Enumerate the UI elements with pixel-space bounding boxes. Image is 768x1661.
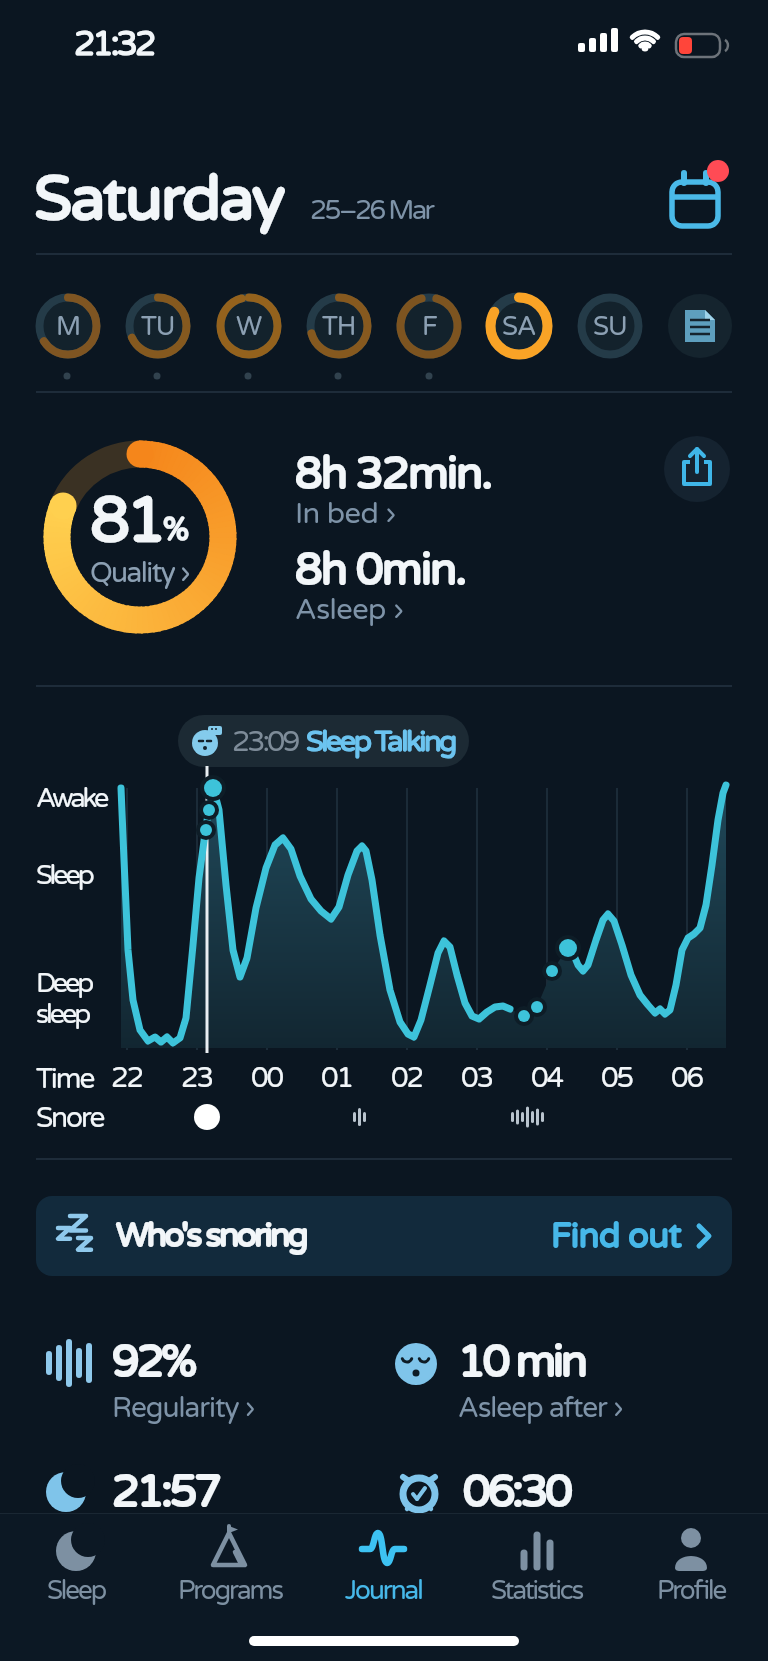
- button[interactable]: SU: [578, 294, 642, 358]
- button[interactable]: SA: [487, 294, 551, 358]
- button[interactable]: [656, 156, 736, 236]
- staticText: 8h 32min.: [295, 448, 492, 501]
- staticText: 8h 32min.: [295, 448, 492, 501]
- staticText: Journal: [345, 1575, 422, 1606]
- staticText: Who's snoring: [116, 1216, 307, 1256]
- staticText: 23: [181, 1061, 213, 1095]
- staticText: W: [236, 311, 262, 342]
- staticText: 00: [251, 1061, 283, 1095]
- staticText: Sleep Talking: [306, 724, 455, 759]
- staticText: %: [163, 511, 190, 550]
- staticText: M: [56, 311, 81, 342]
- button[interactable]: Sleep: [0, 1525, 153, 1606]
- staticText: 92%: [112, 1336, 195, 1389]
- button[interactable]: TU: [126, 294, 190, 358]
- button[interactable]: 21:57: [44, 1466, 219, 1522]
- button[interactable]: [668, 294, 732, 358]
- staticText: Sleep Talking: [306, 724, 455, 759]
- button[interactable]: F: [397, 294, 461, 358]
- staticText: Programs: [178, 1575, 282, 1606]
- staticText: Deep sleep: [36, 967, 92, 1031]
- button[interactable]: 06:30: [395, 1466, 570, 1522]
- button[interactable]: Profile: [614, 1525, 768, 1606]
- staticText: TU: [141, 311, 175, 342]
- staticText: Regularity ›: [112, 1391, 255, 1425]
- staticText: 21:57: [112, 1466, 219, 1519]
- staticText: 92%: [112, 1336, 195, 1389]
- button[interactable]: TH: [307, 294, 371, 358]
- button[interactable]: Asleep ›: [295, 592, 404, 627]
- staticText: 81: [90, 482, 163, 559]
- staticText: 10 min: [458, 1336, 585, 1389]
- staticText: Quality ›: [90, 556, 190, 590]
- staticText: 06:30: [463, 1466, 570, 1519]
- button[interactable]: Statistics: [460, 1525, 614, 1606]
- staticText: SA: [502, 311, 536, 342]
- staticText: Saturday: [34, 162, 284, 237]
- button[interactable]: 10 min: [390, 1336, 623, 1425]
- staticText: Find out: [551, 1216, 682, 1257]
- staticText: 8h 0min.: [295, 544, 466, 597]
- staticText: Awake: [36, 782, 107, 815]
- staticText: SU: [593, 311, 627, 342]
- staticText: 25–26 Mar: [310, 194, 433, 227]
- staticText: 81: [90, 482, 163, 559]
- staticText: %: [163, 511, 190, 550]
- button[interactable]: Programs: [153, 1525, 306, 1606]
- staticText: F: [422, 311, 437, 342]
- button[interactable]: 23:09: [178, 715, 469, 767]
- staticText: 21:32: [74, 24, 154, 65]
- button[interactable]: [664, 436, 730, 502]
- staticText: Sleep: [36, 859, 92, 892]
- staticText: 21:57: [112, 1466, 219, 1519]
- button[interactable]: W: [217, 294, 281, 358]
- staticText: Statistics: [491, 1575, 583, 1606]
- staticText: 06:30: [463, 1466, 570, 1519]
- staticText: 06: [671, 1061, 703, 1095]
- staticText: Asleep after ›: [458, 1391, 623, 1425]
- staticText: 21:32: [74, 24, 154, 65]
- staticText: Time: [36, 1062, 94, 1096]
- staticText: Snore: [36, 1101, 104, 1135]
- staticText: Sleep: [47, 1575, 106, 1606]
- staticText: Who's snoring: [116, 1216, 307, 1256]
- button[interactable]: 81: [40, 437, 240, 637]
- button[interactable]: Who's snoring: [36, 1196, 732, 1276]
- staticText: 04: [531, 1061, 563, 1095]
- staticText: Profile: [657, 1575, 726, 1606]
- staticText: Find out: [551, 1216, 682, 1257]
- button[interactable]: M: [36, 294, 100, 358]
- staticText: 05: [601, 1061, 633, 1095]
- staticText: 23:09: [232, 724, 298, 759]
- staticText: 03: [461, 1061, 493, 1095]
- staticText: 02: [391, 1061, 423, 1095]
- button[interactable]: In bed ›: [295, 496, 396, 531]
- button[interactable]: 92%: [44, 1336, 255, 1425]
- staticText: 22: [111, 1061, 143, 1095]
- staticText: 10 min: [458, 1336, 585, 1389]
- button[interactable]: Journal: [306, 1525, 460, 1606]
- staticText: Saturday: [34, 162, 284, 237]
- staticText: 01: [321, 1061, 353, 1095]
- staticText: 8h 0min.: [295, 544, 466, 597]
- staticText: TH: [322, 311, 356, 342]
